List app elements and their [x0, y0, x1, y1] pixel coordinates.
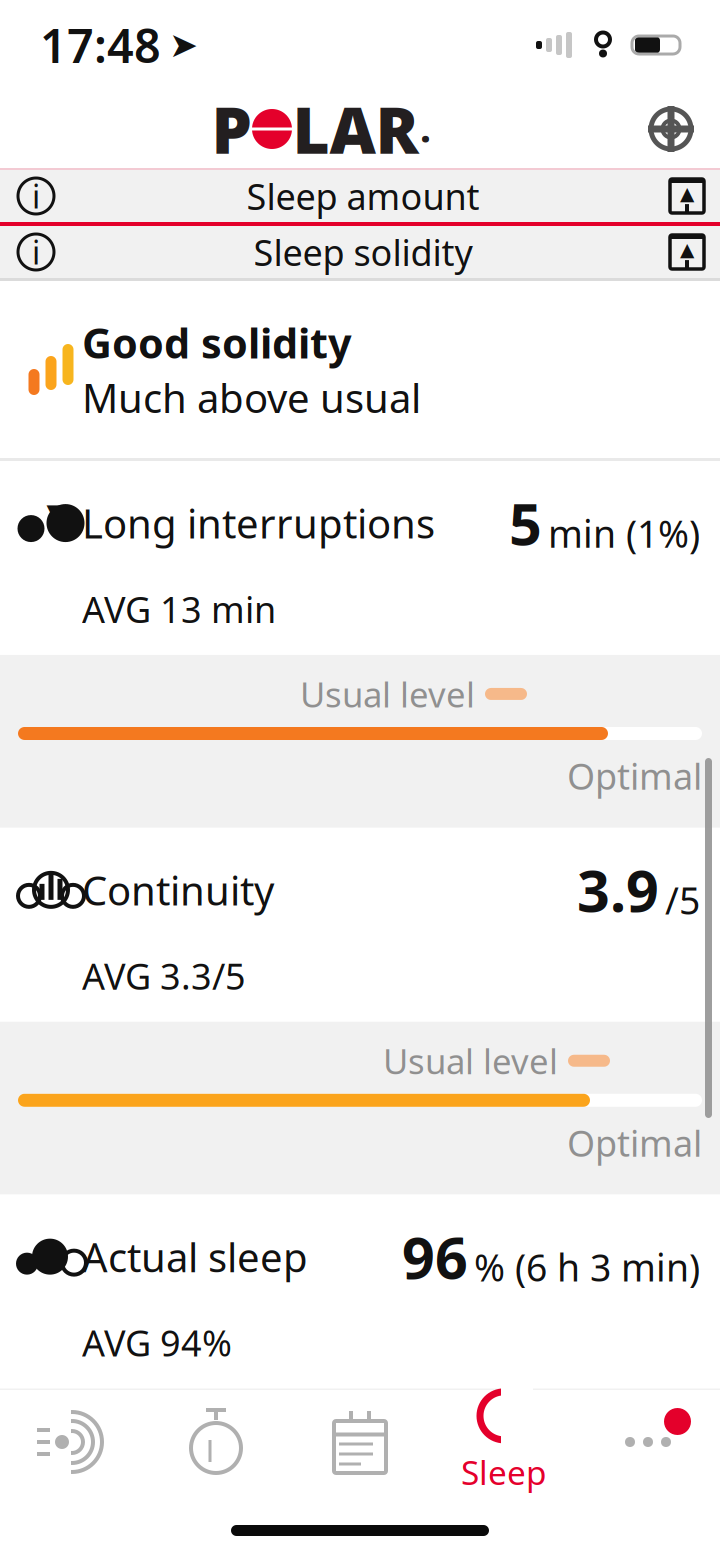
button[interactable]: Training	[144, 1390, 288, 1494]
staticText: Optimal	[567, 1119, 702, 1167]
staticText: Actual sleep	[82, 1230, 308, 1283]
staticText: ▼	[46, 500, 61, 523]
staticText: AVG 94%	[82, 1319, 232, 1366]
staticText: P	[211, 86, 251, 171]
staticText: LAR	[292, 86, 418, 171]
staticText: /5	[665, 875, 700, 925]
staticText: ▲	[680, 183, 694, 204]
staticText: 5	[509, 485, 542, 561]
button[interactable]: Activity	[0, 1390, 144, 1494]
staticText: Continuity	[82, 863, 274, 916]
button[interactable]: Sleep	[432, 1390, 576, 1494]
staticText: i	[32, 231, 40, 273]
staticText: Optimal	[567, 752, 702, 800]
button[interactable]: i	[0, 226, 720, 278]
staticText: Sleep solidity	[253, 228, 472, 276]
button[interactable]: Diary	[288, 1390, 432, 1494]
staticText: Much above usual	[82, 371, 421, 424]
staticText: 3.9	[577, 852, 659, 928]
staticText: min (1%)	[548, 509, 700, 558]
button[interactable]: i	[0, 170, 720, 222]
staticText: ▲	[680, 239, 694, 260]
staticText: Usual level	[300, 671, 475, 717]
button[interactable]: More	[576, 1390, 720, 1494]
staticText: Sleep	[461, 1450, 547, 1494]
staticText: Usual level	[383, 1038, 558, 1084]
staticText: AVG 13 min	[82, 585, 276, 633]
staticText: i	[32, 175, 40, 217]
staticText: .	[420, 106, 430, 152]
staticText: 17:48	[40, 14, 161, 76]
staticText: Sleep amount	[246, 172, 479, 220]
staticText: ➤	[169, 25, 198, 65]
staticText: Good solidity	[82, 315, 352, 370]
button[interactable]: Settings	[642, 100, 720, 158]
staticText: 96	[402, 1219, 468, 1295]
staticText: AVG 3.3/5	[82, 952, 246, 1000]
staticText: Usual level	[381, 1404, 556, 1450]
staticText: % (6 h 3 min)	[474, 1242, 700, 1292]
staticText: Long interruptions	[82, 496, 435, 550]
